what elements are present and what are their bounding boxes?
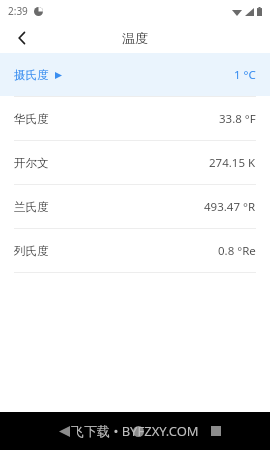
staticText: 274.15 K bbox=[209, 155, 256, 171]
button[interactable]: 华氏度 bbox=[0, 97, 270, 140]
button[interactable]: Recents bbox=[208, 423, 224, 439]
staticText: 华氏度 bbox=[14, 112, 49, 126]
staticText: 兰氏度 bbox=[14, 200, 49, 214]
staticText: 列氏度 bbox=[14, 244, 49, 258]
staticText: 温度 bbox=[122, 30, 148, 46]
staticText: 493.47 °R bbox=[204, 199, 256, 215]
button[interactable]: Home bbox=[130, 423, 146, 439]
button[interactable]: Back bbox=[56, 423, 72, 439]
button[interactable]: 摄氏度 bbox=[0, 53, 270, 96]
staticText: 飞下载 • BYFZXY.COM bbox=[71, 422, 199, 440]
staticText: 2:39 bbox=[8, 4, 28, 18]
staticText: 0.8 °Re bbox=[218, 243, 256, 259]
button[interactable]: 列氏度 bbox=[0, 229, 270, 272]
staticText: 开尔文 bbox=[14, 156, 49, 170]
staticText: 摄氏度 bbox=[14, 68, 49, 82]
button[interactable]: 兰氏度 bbox=[0, 185, 270, 228]
button[interactable]: Back bbox=[8, 24, 36, 52]
button[interactable]: 开尔文 bbox=[0, 141, 270, 184]
staticText: 1 °C bbox=[234, 67, 256, 83]
staticText: 33.8 °F bbox=[219, 111, 256, 127]
